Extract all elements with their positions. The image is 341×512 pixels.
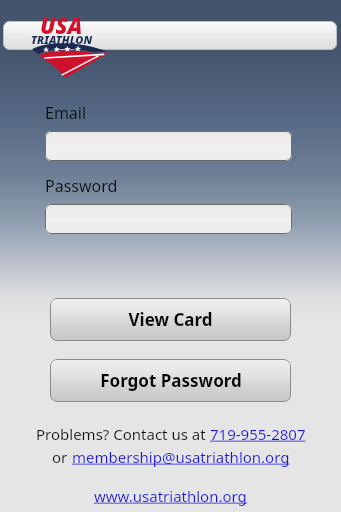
button[interactable]	[45, 204, 292, 234]
staticText: 719-955-2807	[210, 424, 306, 444]
staticText: Forgot Password	[100, 369, 242, 392]
staticText: Email	[45, 102, 87, 124]
staticText: Password	[45, 175, 118, 197]
button[interactable]: View Card	[50, 298, 291, 341]
staticText: membership@usatriathlon.org	[72, 447, 290, 467]
staticText: or	[52, 447, 72, 467]
staticText: USA	[40, 10, 83, 40]
staticText: www.usatriathlon.org	[94, 486, 247, 506]
staticText: Problems? Contact us at	[36, 424, 210, 444]
button[interactable]: 719-955-2807	[210, 424, 306, 444]
staticText: TRIATHLON	[31, 32, 93, 47]
button[interactable]: membership@usatriathlon.org	[72, 447, 290, 467]
staticText: View Card	[128, 308, 213, 331]
button[interactable]	[45, 131, 292, 161]
button[interactable]: www.usatriathlon.org	[94, 486, 247, 506]
button[interactable]: Forgot Password	[50, 359, 291, 402]
